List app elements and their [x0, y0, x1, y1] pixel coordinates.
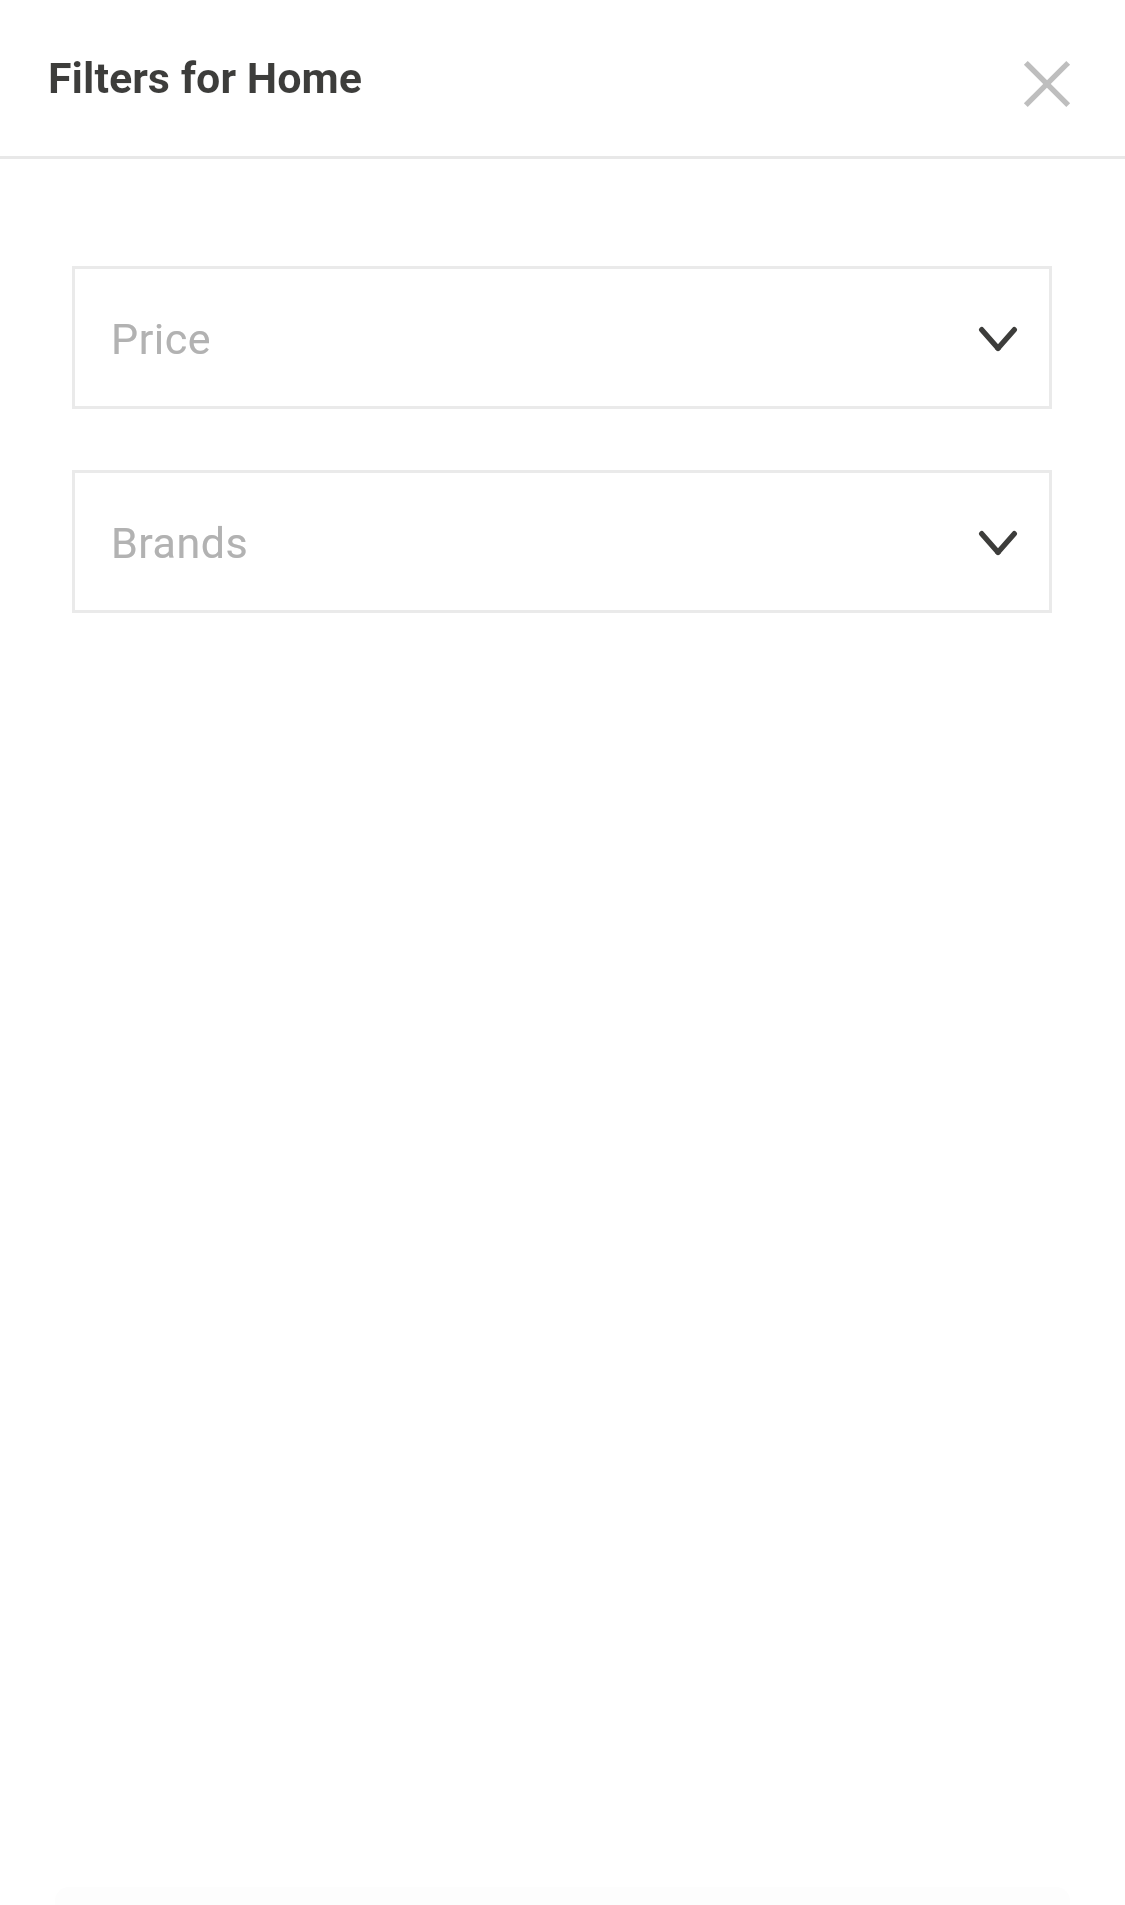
staticText: Filters for Home [48, 53, 363, 103]
staticText: Brands [111, 518, 249, 568]
button[interactable]: Price [72, 266, 1052, 409]
button[interactable]: Close [1003, 40, 1091, 128]
staticText: Price [111, 314, 211, 364]
button[interactable]: Brands [72, 470, 1052, 613]
